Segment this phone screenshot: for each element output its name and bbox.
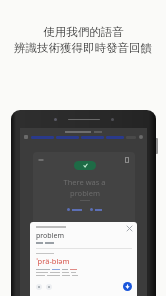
button[interactable]: Play audio <box>36 284 42 290</box>
button[interactable]: Bookmark <box>124 157 130 163</box>
button[interactable]: Back <box>33 152 135 248</box>
button[interactable] <box>66 207 83 212</box>
button[interactable]: problem <box>30 222 137 296</box>
button[interactable]: Slow audio <box>46 284 52 290</box>
button[interactable]: Close <box>127 226 132 231</box>
staticText: There was a <box>63 177 106 187</box>
staticText: 使用我們的語音 <box>43 25 124 39</box>
button[interactable]: Back <box>38 157 44 163</box>
staticText: problem <box>36 231 64 241</box>
button[interactable]: Close <box>139 135 143 139</box>
button[interactable] <box>89 207 103 212</box>
staticText: ˈprä-bləm <box>36 256 70 266</box>
staticText: problem <box>70 188 100 198</box>
staticText: 辨識技術獲得即時發音回饋 <box>14 41 152 55</box>
button[interactable]: Download <box>123 282 132 291</box>
button[interactable]: Back <box>24 135 28 139</box>
